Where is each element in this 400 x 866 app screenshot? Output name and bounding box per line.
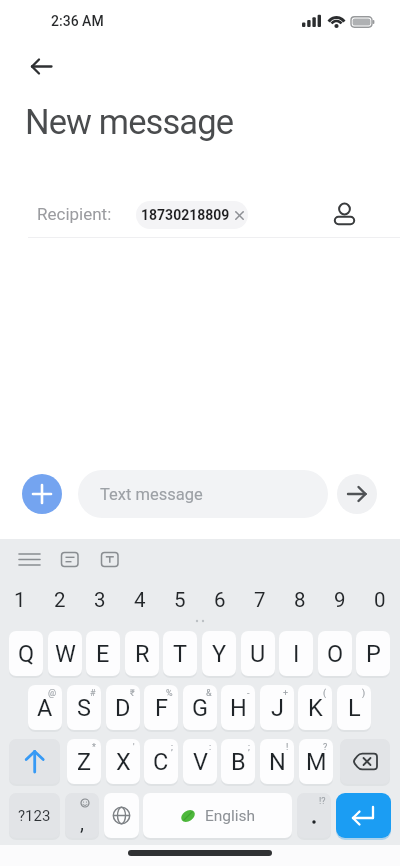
button[interactable]: U (241, 631, 275, 676)
staticText: B (231, 748, 246, 776)
staticText: ; (248, 742, 250, 753)
staticText: N (269, 748, 286, 776)
staticText: @ (48, 688, 57, 699)
button[interactable]: E (86, 631, 120, 676)
button[interactable]: I (279, 631, 313, 676)
button[interactable]: 6 (200, 587, 240, 613)
button[interactable] (9, 739, 60, 784)
button[interactable]: 2 (40, 587, 80, 613)
staticText: & (206, 688, 212, 699)
staticText: 2:36 AM (51, 13, 104, 29)
button[interactable]: 18730218809 (136, 201, 248, 229)
button[interactable]: B (221, 739, 255, 784)
button[interactable]: M (299, 739, 333, 784)
button[interactable]: O (318, 631, 352, 676)
button[interactable]: N (260, 739, 294, 784)
button[interactable]: G (183, 685, 217, 730)
button[interactable]: 5 (160, 587, 200, 613)
button[interactable]: 4 (120, 587, 160, 613)
button[interactable]: P (356, 631, 390, 676)
button[interactable]: T (163, 631, 197, 676)
button[interactable] (22, 52, 60, 82)
staticText: 0 (374, 588, 386, 612)
staticText: U (250, 640, 266, 668)
staticText: 8 (294, 588, 306, 612)
button[interactable]: Y (202, 631, 236, 676)
staticText: 4 (134, 588, 146, 612)
button[interactable]: 8 (280, 587, 320, 613)
button[interactable]: 0 (360, 587, 400, 613)
button[interactable] (14, 547, 46, 573)
staticText: R (135, 640, 150, 668)
button[interactable] (96, 547, 124, 573)
staticText: G (192, 694, 209, 722)
staticText: Y (212, 640, 227, 668)
staticText: + (283, 688, 289, 699)
staticText: 5 (174, 588, 186, 612)
button[interactable]: V (183, 739, 217, 784)
button[interactable] (337, 474, 377, 514)
button[interactable]: K (298, 685, 332, 730)
staticText: # (90, 688, 96, 699)
button[interactable]: X (106, 739, 140, 784)
staticText: ( (323, 688, 327, 699)
staticText: L (348, 694, 361, 722)
staticText: K (308, 694, 323, 722)
staticText: O (327, 640, 344, 668)
staticText: * (92, 742, 96, 753)
button[interactable]: Text message (78, 470, 328, 518)
button[interactable]: !? (297, 793, 331, 838)
staticText: H (230, 694, 247, 722)
button[interactable]: ?123 (9, 793, 60, 838)
button[interactable]: S (67, 685, 101, 730)
staticText: - (247, 688, 250, 699)
button[interactable]: C (144, 739, 178, 784)
button[interactable]: Z (67, 739, 101, 784)
button[interactable]: H (221, 685, 255, 730)
staticText: % (166, 688, 173, 699)
button[interactable]: 9 (320, 587, 360, 613)
staticText: , (80, 811, 84, 834)
button[interactable] (336, 793, 391, 838)
button[interactable]: W (48, 631, 82, 676)
staticText: D (115, 694, 131, 722)
button[interactable]: D (106, 685, 140, 730)
button[interactable]: 7 (240, 587, 280, 613)
button[interactable] (104, 793, 139, 838)
button[interactable]: 1 (0, 587, 40, 613)
button[interactable]: F (144, 685, 178, 730)
button[interactable] (56, 547, 84, 573)
staticText: English (205, 807, 256, 825)
staticText: 9 (334, 588, 346, 612)
staticText: Text message (100, 485, 203, 504)
staticText: S (77, 694, 91, 722)
staticText: A (37, 694, 53, 722)
button[interactable]: L (337, 685, 371, 730)
staticText: ' (133, 742, 135, 753)
button[interactable] (340, 739, 390, 784)
staticText: ; (171, 742, 173, 753)
staticText: !? (319, 796, 326, 807)
button[interactable]: J (260, 685, 294, 730)
staticText: P (366, 640, 381, 668)
button[interactable]: Q (9, 631, 43, 676)
button[interactable]: A (28, 685, 62, 730)
button[interactable]: 3 (80, 587, 120, 613)
button[interactable]: R (125, 631, 159, 676)
button[interactable]: English (143, 793, 292, 838)
button[interactable] (22, 474, 62, 514)
staticText: 3 (94, 588, 106, 612)
staticText: 18730218809 (141, 207, 230, 223)
staticText: J (271, 694, 284, 722)
staticText: Z (77, 748, 92, 776)
button[interactable]: , (65, 793, 99, 838)
staticText: ! (286, 742, 289, 753)
staticText: C (153, 748, 169, 776)
staticText: 2 (54, 588, 66, 612)
staticText: E (96, 640, 110, 668)
button[interactable] (330, 196, 360, 228)
staticText: 6 (214, 588, 226, 612)
staticText: Q (18, 640, 35, 668)
staticText: M (306, 748, 327, 776)
staticText: : (209, 742, 212, 753)
